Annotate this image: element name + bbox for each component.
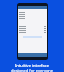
staticText: designed for everyone	[0, 68, 64, 72]
staticText: Intuitive interface	[0, 63, 64, 68]
